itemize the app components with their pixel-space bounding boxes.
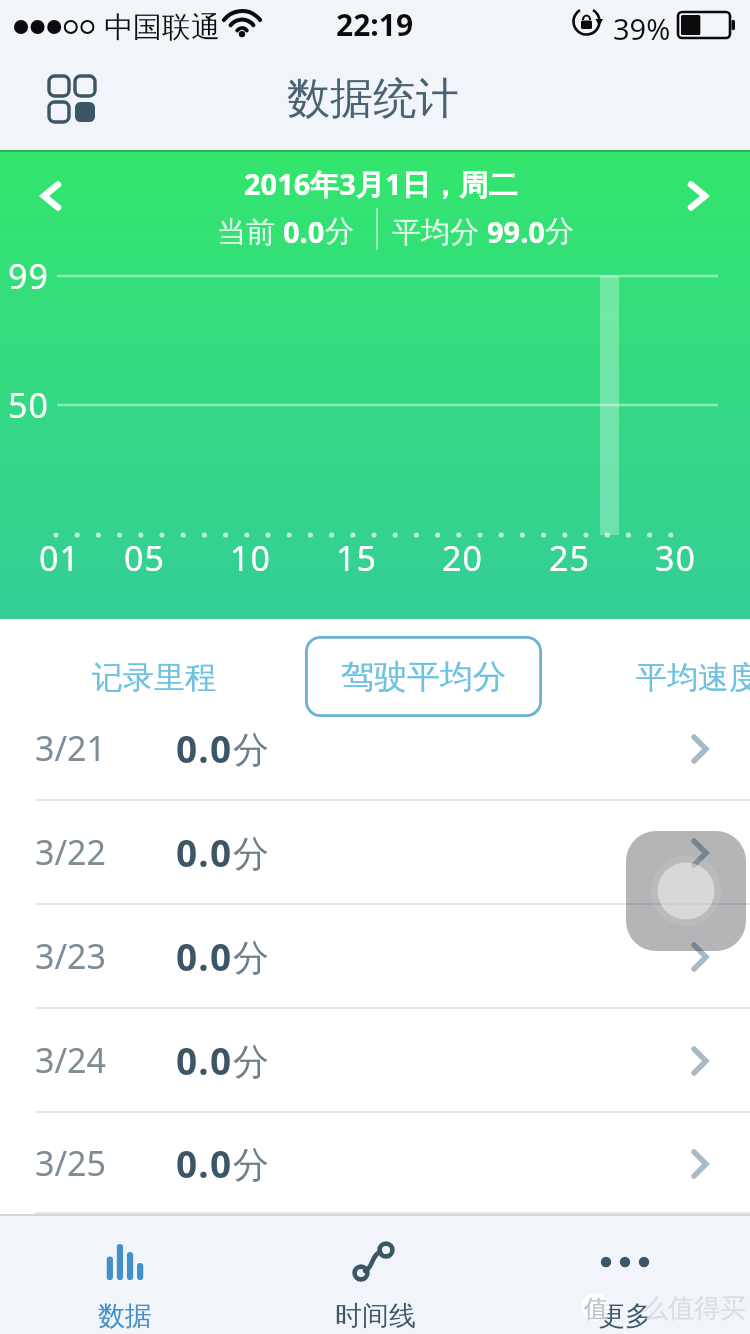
staticText: 中国联通 bbox=[104, 9, 220, 46]
staticText: 平均分 bbox=[392, 211, 487, 251]
staticText: 20 bbox=[442, 535, 483, 581]
staticText: 0.0 bbox=[283, 212, 325, 251]
button[interactable]: 更多 bbox=[500, 1216, 750, 1334]
button[interactable]: 3/25 bbox=[0, 1113, 750, 1214]
staticText: 3/25 bbox=[35, 1140, 106, 1186]
button[interactable]: 3/22 bbox=[0, 801, 750, 905]
staticText: 分 bbox=[233, 1142, 269, 1187]
staticText: 么值得买 bbox=[642, 1292, 746, 1325]
button[interactable]: 3/24 bbox=[0, 1009, 750, 1113]
staticText: 3/21 bbox=[35, 725, 106, 771]
staticText: 3/22 bbox=[35, 829, 106, 875]
staticText: 分 bbox=[233, 935, 269, 980]
staticText: 0.0 bbox=[176, 723, 233, 773]
staticText: 50 bbox=[8, 382, 49, 428]
staticText: 22:19 bbox=[336, 4, 414, 45]
staticText: 分 bbox=[233, 831, 269, 876]
staticText: 更多 bbox=[598, 1299, 652, 1333]
staticText: 数据 bbox=[98, 1299, 152, 1333]
staticText: 2016年3月1日，周二 bbox=[244, 164, 518, 204]
button[interactable]: 驾驶平均分 bbox=[305, 636, 542, 717]
staticText: 0.0 bbox=[176, 1035, 233, 1085]
button[interactable]: 时间线 bbox=[250, 1216, 500, 1334]
staticText: 25 bbox=[549, 535, 590, 581]
button[interactable]: Assistive touch bbox=[626, 831, 746, 951]
button[interactable]: Grid menu bbox=[39, 66, 105, 132]
button[interactable]: 数据 bbox=[0, 1216, 250, 1334]
staticText: 当前 bbox=[217, 211, 283, 251]
staticText: 分 bbox=[325, 213, 354, 250]
staticText: 时间线 bbox=[335, 1299, 416, 1333]
staticText: 3/23 bbox=[35, 933, 106, 979]
staticText: 0.0 bbox=[176, 931, 233, 981]
staticText: 记录里程 bbox=[92, 658, 216, 697]
staticText: 分 bbox=[233, 727, 269, 772]
button[interactable]: 3/23 bbox=[0, 905, 750, 1009]
button[interactable]: Previous day bbox=[16, 161, 86, 231]
button[interactable]: Next day bbox=[664, 161, 734, 231]
staticText: 30 bbox=[655, 535, 696, 581]
staticText: 驾驶平均分 bbox=[341, 656, 506, 698]
staticText: 分 bbox=[545, 213, 574, 250]
button[interactable]: 3/21 bbox=[0, 697, 750, 801]
staticText: 10 bbox=[230, 535, 271, 581]
staticText: 99 bbox=[8, 253, 49, 299]
staticText: 01 bbox=[39, 535, 80, 581]
staticText: 分 bbox=[233, 1039, 269, 1084]
staticText: 值 bbox=[584, 1294, 608, 1324]
staticText: 05 bbox=[124, 535, 165, 581]
staticText: 平均速度 bbox=[636, 658, 750, 697]
staticText: 数据统计 bbox=[287, 72, 459, 126]
button[interactable]: 记录里程 bbox=[36, 619, 271, 697]
staticText: 99.0 bbox=[487, 212, 545, 251]
staticText: 0.0 bbox=[176, 827, 233, 877]
button[interactable]: 平均速度 bbox=[576, 619, 750, 697]
staticText: 15 bbox=[336, 535, 377, 581]
staticText: 39% bbox=[613, 9, 671, 48]
staticText: 0.0 bbox=[176, 1138, 233, 1188]
staticText: 3/24 bbox=[35, 1037, 106, 1083]
